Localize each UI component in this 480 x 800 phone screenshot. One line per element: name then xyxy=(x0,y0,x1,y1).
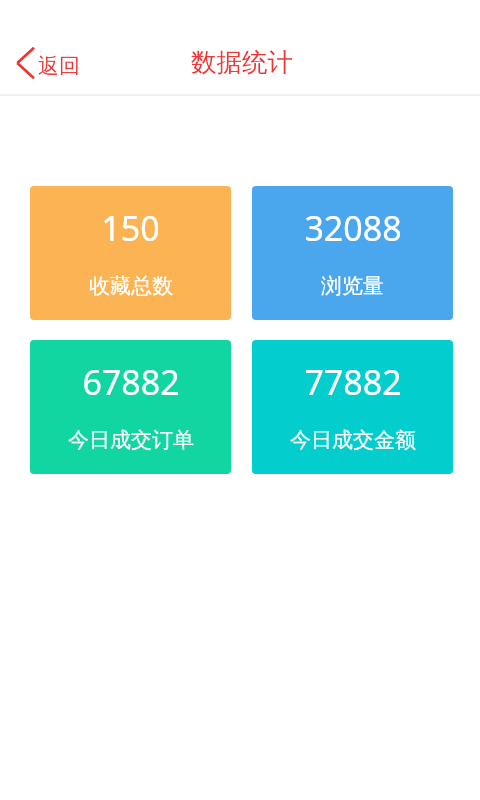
staticText: 收藏总数 xyxy=(89,273,173,299)
button[interactable]: 32088 xyxy=(252,186,453,320)
staticText: 返回 xyxy=(38,53,80,79)
staticText: 数据统计 xyxy=(191,46,293,78)
button[interactable]: 77882 xyxy=(252,340,453,474)
button[interactable]: 67882 xyxy=(30,340,231,474)
staticText: 77882 xyxy=(304,359,402,405)
staticText: 浏览量 xyxy=(321,273,384,299)
button[interactable]: 150 xyxy=(30,186,231,320)
staticText: 150 xyxy=(101,205,160,251)
staticText: 67882 xyxy=(82,359,180,405)
staticText: 今日成交订单 xyxy=(68,427,194,453)
staticText: 今日成交金额 xyxy=(290,427,416,453)
staticText: 32088 xyxy=(304,205,402,251)
button[interactable]: 返回 xyxy=(16,47,80,79)
